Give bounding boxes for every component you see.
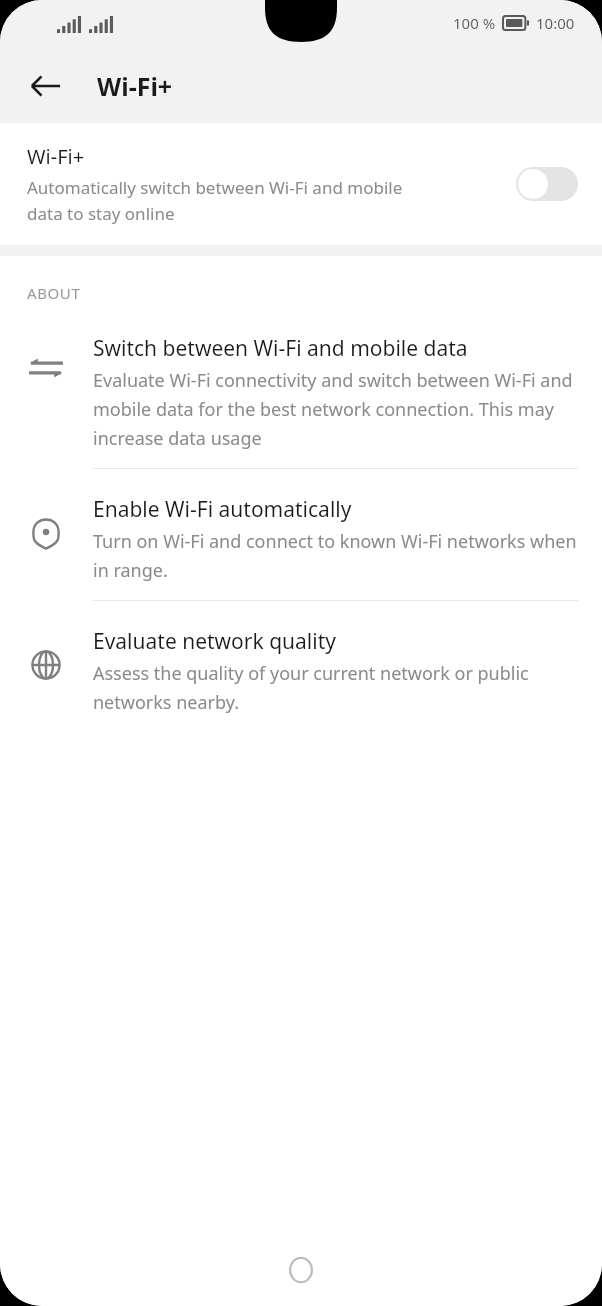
button[interactable]: Back xyxy=(22,62,70,110)
staticText: 10:00 xyxy=(536,13,575,33)
staticText: Automatically switch between Wi-Fi and m… xyxy=(27,176,422,225)
button[interactable]: Switch between Wi-Fi and mobile data xyxy=(0,308,602,469)
button[interactable]: Home xyxy=(200,1234,401,1306)
staticText: ABOUT xyxy=(27,283,81,303)
staticText: Enable Wi-Fi automatically xyxy=(93,495,352,524)
staticText: 100 % xyxy=(453,13,496,33)
button[interactable]: Recents xyxy=(401,1234,602,1306)
button[interactable]: Evaluate network quality xyxy=(0,601,602,732)
button[interactable]: Enable Wi-Fi automatically xyxy=(0,469,602,601)
staticText: Wi-Fi+ xyxy=(27,143,85,170)
staticText: Wi-Fi+ xyxy=(97,69,173,103)
button[interactable]: Wi-Fi+ xyxy=(0,123,602,245)
button[interactable]: Wi-Fi+ toggle xyxy=(516,167,578,201)
staticText: Switch between Wi-Fi and mobile data xyxy=(93,334,468,363)
staticText: Turn on Wi-Fi and connect to known Wi-Fi… xyxy=(93,529,578,582)
staticText: Assess the quality of your current netwo… xyxy=(93,661,578,714)
staticText: Evaluate Wi-Fi connectivity and switch b… xyxy=(93,368,578,450)
staticText: Evaluate network quality xyxy=(93,627,336,656)
button[interactable]: Back xyxy=(0,1234,200,1306)
